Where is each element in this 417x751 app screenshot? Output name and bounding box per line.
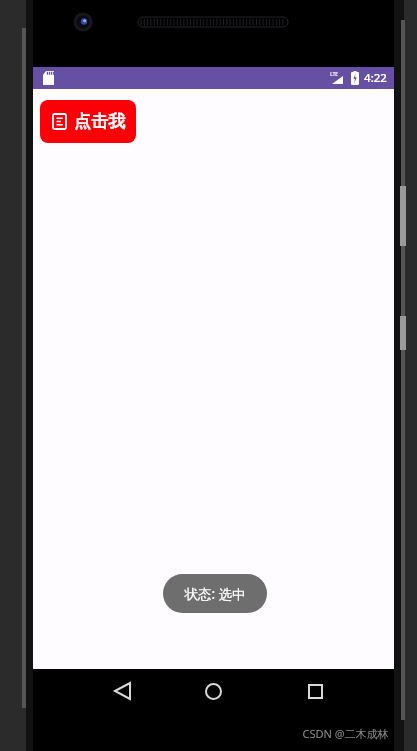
staticText: 状态: 选中: [184, 585, 246, 603]
staticText: 4:22: [364, 70, 387, 86]
button[interactable]: Home: [186, 669, 240, 713]
button[interactable]: 点击我: [40, 100, 136, 143]
staticText: CSDN @二木成林: [302, 726, 389, 741]
button[interactable]: Recent apps: [288, 669, 342, 713]
staticText: LTE: [330, 71, 338, 77]
button[interactable]: Back: [95, 669, 149, 713]
staticText: 点击我: [74, 111, 125, 132]
